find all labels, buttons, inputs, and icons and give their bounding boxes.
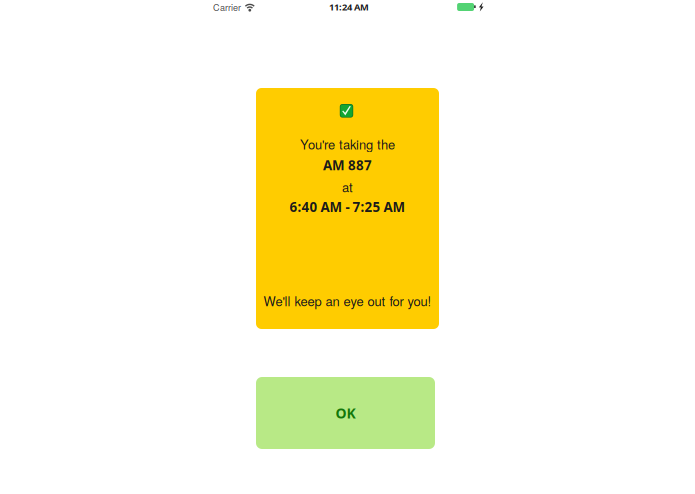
staticText: 11:24 AM <box>329 1 369 13</box>
staticText: Carrier <box>213 0 241 13</box>
staticText: 6:40 AM - 7:25 AM <box>289 198 405 216</box>
staticText: OK <box>335 403 355 423</box>
button[interactable]: OK <box>256 377 435 449</box>
staticText: We'll keep an eye out for you! <box>263 291 431 310</box>
staticText: at <box>342 177 353 196</box>
staticText: AM 887 <box>323 156 372 174</box>
staticText: You're taking the <box>300 135 395 153</box>
